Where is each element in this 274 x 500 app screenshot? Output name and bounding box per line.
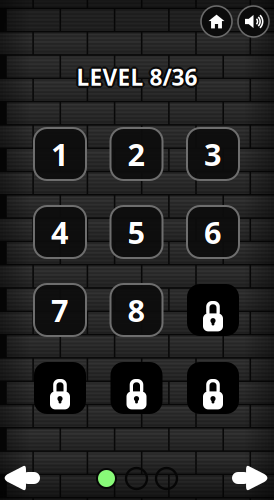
staticText: LEVEL 8/36 bbox=[78, 62, 199, 92]
button[interactable]: 7 bbox=[34, 284, 86, 336]
button[interactable]: 3 bbox=[187, 128, 239, 180]
staticText: 4 bbox=[51, 212, 69, 252]
button[interactable]: Home bbox=[201, 6, 232, 37]
staticText: LEVEL 8/36 bbox=[76, 62, 197, 92]
staticText: LEVEL 8/36 bbox=[79, 62, 200, 92]
staticText: LEVEL 8/36 bbox=[74, 62, 195, 92]
button[interactable]: 2 bbox=[110, 128, 162, 180]
button[interactable] bbox=[187, 284, 239, 336]
staticText: 3 bbox=[204, 134, 222, 174]
staticText: LEVEL 8/36 bbox=[75, 62, 196, 92]
button[interactable]: 5 bbox=[110, 206, 162, 258]
button[interactable] bbox=[187, 362, 239, 414]
staticText: LEVEL 8/36 bbox=[76, 60, 197, 90]
staticText: LEVEL 8/36 bbox=[75, 63, 196, 93]
staticText: 6 bbox=[204, 212, 222, 252]
button[interactable] bbox=[110, 362, 162, 414]
staticText: LEVEL 8/36 bbox=[76, 63, 197, 94]
staticText: LEVEL 8/36 bbox=[78, 61, 199, 91]
staticText: 1 bbox=[51, 134, 69, 174]
staticText: 5 bbox=[127, 212, 145, 252]
button[interactable]: Sound bbox=[238, 6, 269, 37]
staticText: LEVEL 8/36 bbox=[76, 64, 197, 94]
button[interactable]: 4 bbox=[34, 206, 86, 258]
staticText: LEVEL 8/36 bbox=[76, 60, 197, 90]
button[interactable]: 6 bbox=[187, 206, 239, 258]
staticText: 2 bbox=[127, 134, 145, 174]
staticText: 8 bbox=[127, 290, 145, 330]
button[interactable] bbox=[34, 362, 86, 414]
button[interactable]: Next page bbox=[219, 459, 267, 497]
staticText: 7 bbox=[51, 290, 69, 330]
staticText: LEVEL 8/36 bbox=[75, 61, 196, 91]
button[interactable]: Previous page bbox=[0, 459, 39, 497]
staticText: LEVEL 8/36 bbox=[78, 63, 199, 93]
button[interactable]: 8 bbox=[110, 284, 162, 336]
button[interactable]: 1 bbox=[34, 128, 86, 180]
